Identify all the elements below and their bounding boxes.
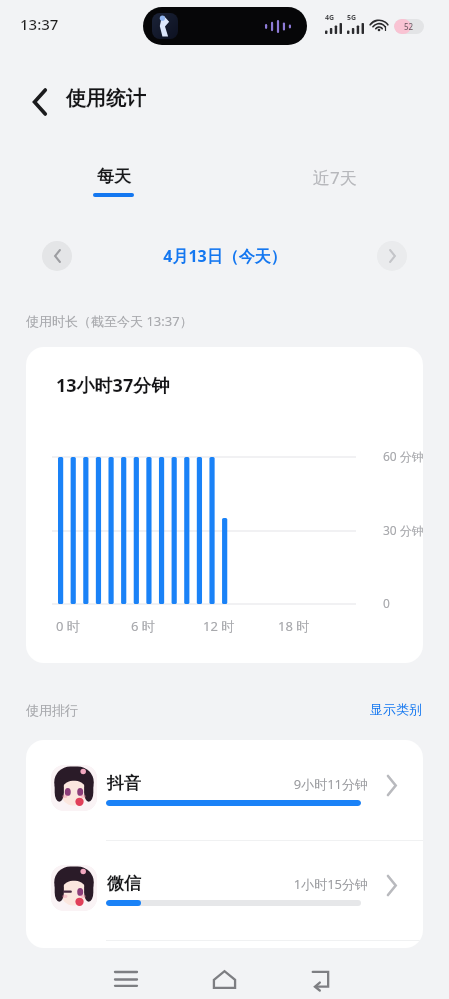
staticText: 18 时 bbox=[278, 617, 310, 635]
button[interactable]: Back bbox=[294, 954, 350, 999]
staticText: 6 时 bbox=[131, 617, 155, 635]
button[interactable]: 近7天 bbox=[292, 166, 378, 208]
staticText: 12 时 bbox=[203, 617, 235, 635]
button[interactable]: 4月13日（今天） bbox=[125, 242, 325, 270]
staticText: 4月13日（今天） bbox=[163, 245, 287, 267]
staticText: 60 分钟 bbox=[383, 448, 423, 464]
staticText: 微信 bbox=[107, 873, 141, 894]
staticText: 13:37 bbox=[20, 14, 59, 34]
staticText: 52 bbox=[404, 21, 414, 32]
staticText: 使用排行 bbox=[26, 702, 78, 718]
button[interactable]: 每天 bbox=[72, 166, 154, 208]
staticText: 9小时11分钟 bbox=[293, 775, 368, 793]
staticText: 0 bbox=[383, 595, 390, 611]
staticText: 抖音 bbox=[107, 773, 141, 794]
staticText: 近7天 bbox=[313, 166, 357, 189]
staticText: 1小时15分钟 bbox=[293, 875, 368, 893]
button[interactable]: 显示类别 bbox=[350, 694, 426, 724]
staticText: 4G bbox=[325, 13, 335, 23]
staticText: 0 时 bbox=[56, 617, 80, 635]
button[interactable]: 抖音 bbox=[26, 740, 423, 840]
button[interactable]: Previous day bbox=[42, 241, 72, 271]
staticText: 30 分钟 bbox=[383, 522, 423, 538]
button[interactable]: Next day bbox=[377, 241, 407, 271]
staticText: 使用统计 bbox=[66, 86, 146, 111]
staticText: 每天 bbox=[97, 166, 131, 187]
staticText: 使用时长（截至今天 13:37） bbox=[26, 312, 193, 330]
button[interactable]: 微信 bbox=[26, 840, 423, 940]
staticText: 5G bbox=[347, 13, 357, 23]
button[interactable]: Home bbox=[196, 954, 252, 999]
staticText: 13小时37分钟 bbox=[56, 373, 170, 398]
button[interactable]: Back bbox=[18, 80, 62, 124]
staticText: 显示类别 bbox=[370, 701, 422, 717]
button[interactable]: Recent apps bbox=[98, 954, 154, 999]
